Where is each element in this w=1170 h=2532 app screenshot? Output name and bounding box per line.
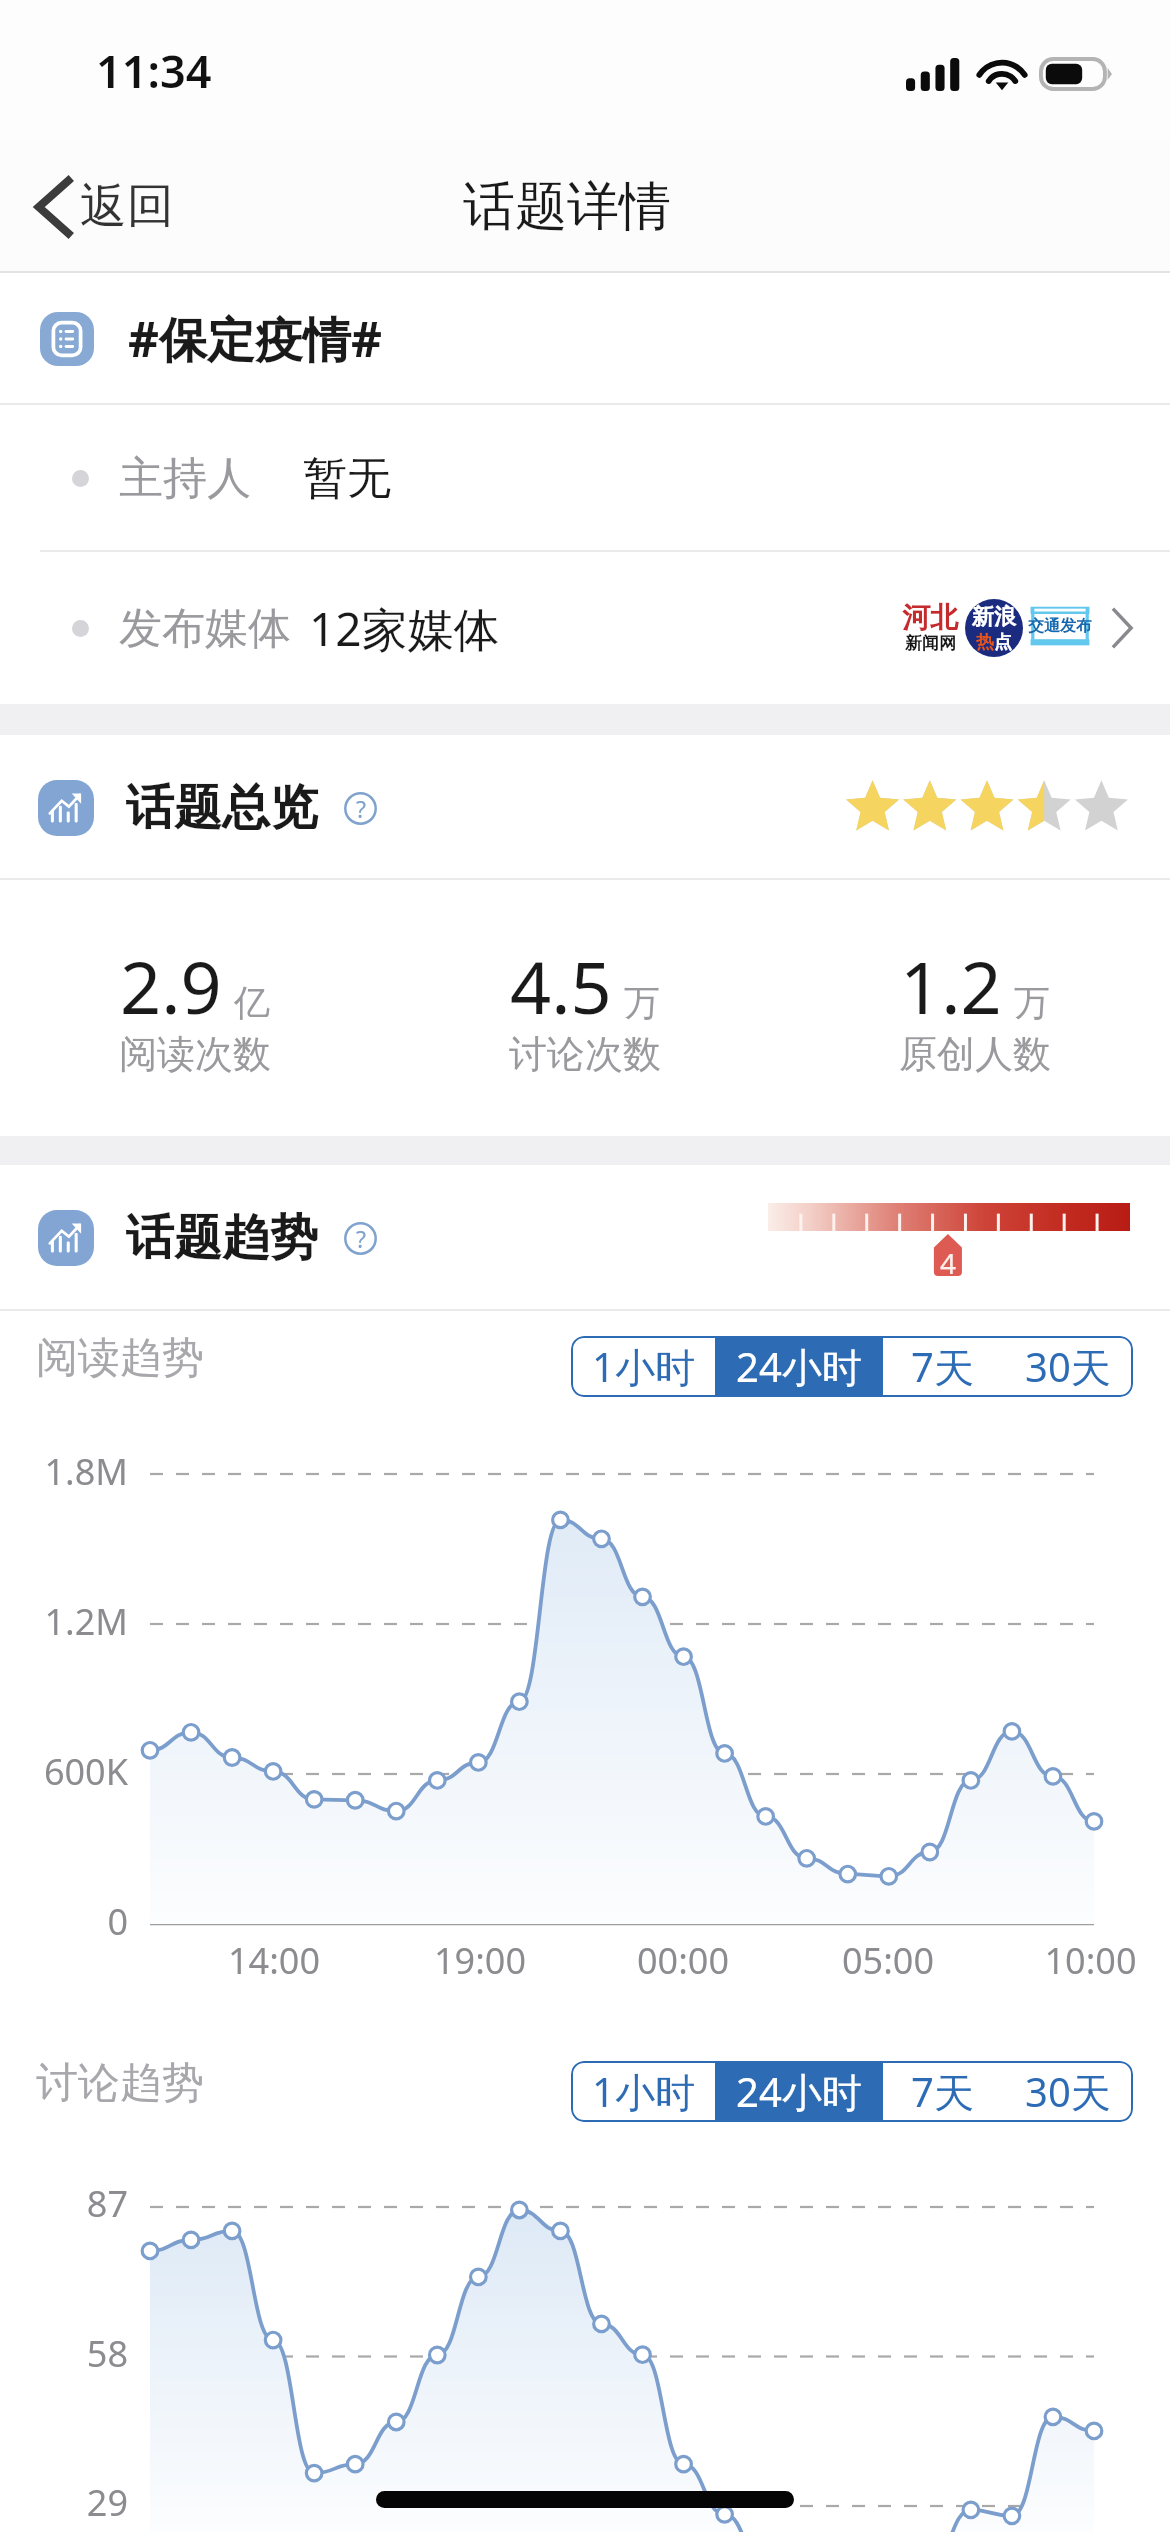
button[interactable]: 1小时 [571, 1336, 715, 1397]
staticText: 新闻网 [905, 633, 956, 654]
button[interactable]: 30天 [1002, 1336, 1133, 1397]
staticText: 万 [624, 980, 660, 1025]
staticText: 87 [0, 2179, 128, 2228]
staticText: 1.2 [900, 937, 1002, 1035]
staticText: 58 [0, 2329, 128, 2378]
staticText: 暂无 [303, 451, 391, 506]
staticText: 1.2M [0, 1597, 128, 1646]
button[interactable]: 帮助说明 [344, 792, 377, 825]
staticText: 14:00 [194, 1936, 354, 1985]
staticText: 05:00 [808, 1936, 968, 1985]
staticText: 11:34 [96, 40, 212, 101]
staticText: 600K [0, 1747, 128, 1796]
staticText: 新浪 [972, 603, 1016, 631]
staticText: 10:00 [1011, 1936, 1170, 1985]
staticText: 返回 [80, 177, 174, 236]
staticText: 4.5 [510, 937, 612, 1035]
staticText: 阅读趋势 [36, 1332, 204, 1385]
button[interactable]: 帮助说明 [344, 1222, 377, 1255]
button[interactable]: 7天 [883, 2061, 1002, 2122]
button[interactable]: 24小时 [715, 2061, 883, 2122]
staticText: 交通发布 [1028, 616, 1092, 636]
staticText: 4 [940, 1244, 957, 1276]
button[interactable]: 24小时 [715, 1336, 883, 1397]
staticText: 原创人数 [899, 1030, 1051, 1078]
staticText: 发布媒体 [119, 602, 291, 656]
staticText: 12家媒体 [309, 597, 500, 660]
button[interactable]: 7天 [883, 1336, 1002, 1397]
staticText: 7天 [911, 2064, 974, 2119]
staticText: #保定疫情# [128, 306, 383, 372]
staticText: 阅读次数 [119, 1030, 271, 1078]
staticText: 30天 [1025, 2064, 1111, 2119]
staticText: 河北 [902, 600, 958, 635]
staticText: 热 [976, 631, 994, 654]
staticText: 2.9 [120, 937, 222, 1035]
staticText: 7天 [911, 1339, 974, 1394]
staticText: 讨论趋势 [36, 2057, 204, 2110]
staticText: 1小时 [592, 2064, 695, 2119]
staticText: 29 [0, 2478, 128, 2527]
staticText: 话题趋势 [126, 1208, 318, 1268]
staticText: 亿 [234, 980, 270, 1025]
button[interactable]: #保定疫情# [0, 273, 1170, 405]
staticText: 30天 [1025, 1339, 1111, 1394]
button[interactable]: 发布媒体 12家媒体 [0, 552, 1170, 704]
staticText: 话题详情 [463, 174, 671, 240]
button[interactable]: 1小时 [571, 2061, 715, 2122]
staticText: 点 [994, 631, 1012, 654]
button[interactable]: 返回 [18, 163, 190, 250]
staticText: 1.8M [0, 1447, 128, 1496]
button[interactable]: 30天 [1002, 2061, 1133, 2122]
staticText: 1小时 [592, 1339, 695, 1394]
staticText: ? [356, 1223, 366, 1254]
staticText: 24小时 [736, 1339, 862, 1394]
staticText: 00:00 [603, 1936, 763, 1985]
staticText: 19:00 [400, 1936, 560, 1985]
staticText: 话题总览 [126, 778, 318, 838]
staticText: 讨论次数 [509, 1030, 661, 1078]
staticText: ? [356, 793, 366, 824]
staticText: 万 [1014, 980, 1050, 1025]
staticText: 主持人 [119, 451, 251, 506]
staticText: 24小时 [736, 2064, 862, 2119]
staticText: 0 [0, 1897, 128, 1946]
